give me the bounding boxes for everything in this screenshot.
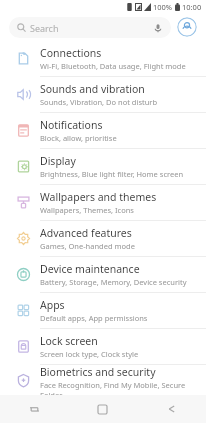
staticText: Wi-Fi, Bluetooth, Data usage, Flight mod… bbox=[40, 61, 186, 71]
button[interactable]: Lock screen bbox=[0, 329, 206, 365]
staticText: Device maintenance bbox=[40, 262, 140, 276]
other: Voice search bbox=[153, 23, 163, 33]
staticText: 10:00 bbox=[182, 2, 202, 12]
staticText: Brightness, Blue light filter, Home scre… bbox=[40, 169, 184, 179]
staticText: Apps bbox=[40, 298, 65, 312]
button[interactable]: Display bbox=[0, 149, 206, 185]
button[interactable]: Device maintenance bbox=[0, 257, 206, 293]
staticText: Biometrics and security bbox=[40, 365, 156, 379]
button[interactable]: Wallpapers and themes bbox=[0, 185, 206, 221]
staticText: Search bbox=[30, 22, 59, 34]
button[interactable]: Connections bbox=[0, 41, 206, 77]
button[interactable]: Account bbox=[177, 17, 197, 37]
staticText: Games, One-handed mode bbox=[40, 241, 135, 251]
button[interactable]: Notifications bbox=[0, 113, 206, 149]
button[interactable]: Back bbox=[137, 395, 206, 423]
button[interactable]: Search bbox=[9, 17, 171, 38]
staticText: Block, allow, prioritise bbox=[40, 133, 117, 143]
staticText: Face Recognition, Find My Mobile, Secure… bbox=[40, 380, 196, 395]
staticText: Screen lock type, Clock style bbox=[40, 349, 139, 359]
staticText: Wallpapers, Themes, Icons bbox=[40, 205, 134, 215]
staticText: Connections bbox=[40, 46, 102, 60]
staticText: Default apps, App permissions bbox=[40, 313, 148, 323]
staticText: Lock screen bbox=[40, 334, 98, 348]
staticText: Sounds, Vibration, Do not disturb bbox=[40, 97, 158, 107]
button[interactable]: Home bbox=[68, 395, 137, 423]
staticText: Sounds and vibration bbox=[40, 82, 145, 96]
button[interactable]: Apps bbox=[0, 293, 206, 329]
button[interactable]: Advanced features bbox=[0, 221, 206, 257]
staticText: Wallpapers and themes bbox=[40, 190, 157, 204]
button[interactable]: Biometrics and security bbox=[0, 365, 206, 395]
staticText: Battery, Storage, Memory, Device securit… bbox=[40, 277, 187, 287]
button[interactable]: Sounds and vibration bbox=[0, 77, 206, 113]
staticText: Display bbox=[40, 154, 76, 168]
staticText: Notifications bbox=[40, 118, 103, 132]
staticText: 100% bbox=[153, 2, 173, 12]
staticText: Advanced features bbox=[40, 226, 132, 240]
button[interactable]: Recents bbox=[0, 395, 68, 423]
